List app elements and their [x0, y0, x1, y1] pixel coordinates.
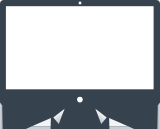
button[interactable]: Display screen	[0, 0, 160, 129]
